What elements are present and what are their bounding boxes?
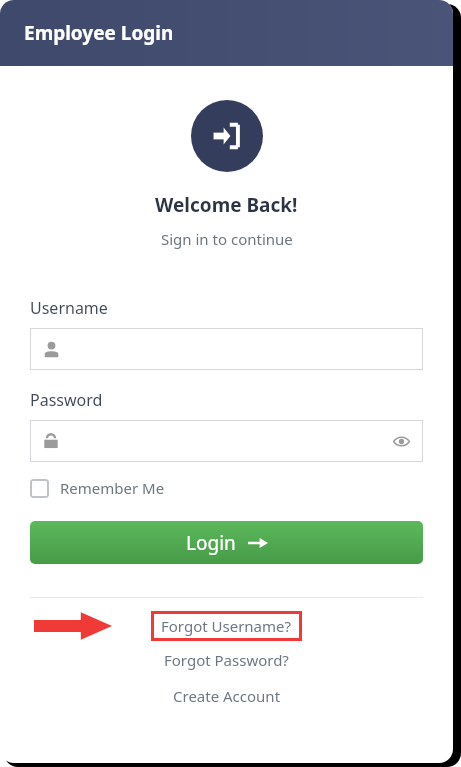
button[interactable]: Remember Me [30,478,423,498]
button[interactable]: Create Account [173,683,281,709]
button[interactable]: Forgot Username? [151,611,302,641]
staticText: Forgot Password? [164,650,289,670]
staticText: Sign in to continue [161,229,293,249]
button[interactable]: Forgot Password? [164,647,289,673]
staticText: Password [30,389,103,411]
staticText: Username [30,297,108,319]
button[interactable]: Username field [30,328,423,370]
staticText: Employee Login [24,20,174,46]
staticText: Welcome Back! [155,192,298,218]
button[interactable]: Show password [393,433,410,450]
staticText: Create Account [173,686,281,706]
button[interactable]: Login [30,521,423,564]
staticText: Forgot Username? [161,616,292,636]
staticText: Login [186,530,236,556]
staticText: Remember Me [60,478,165,498]
button[interactable]: Password field [30,420,423,462]
